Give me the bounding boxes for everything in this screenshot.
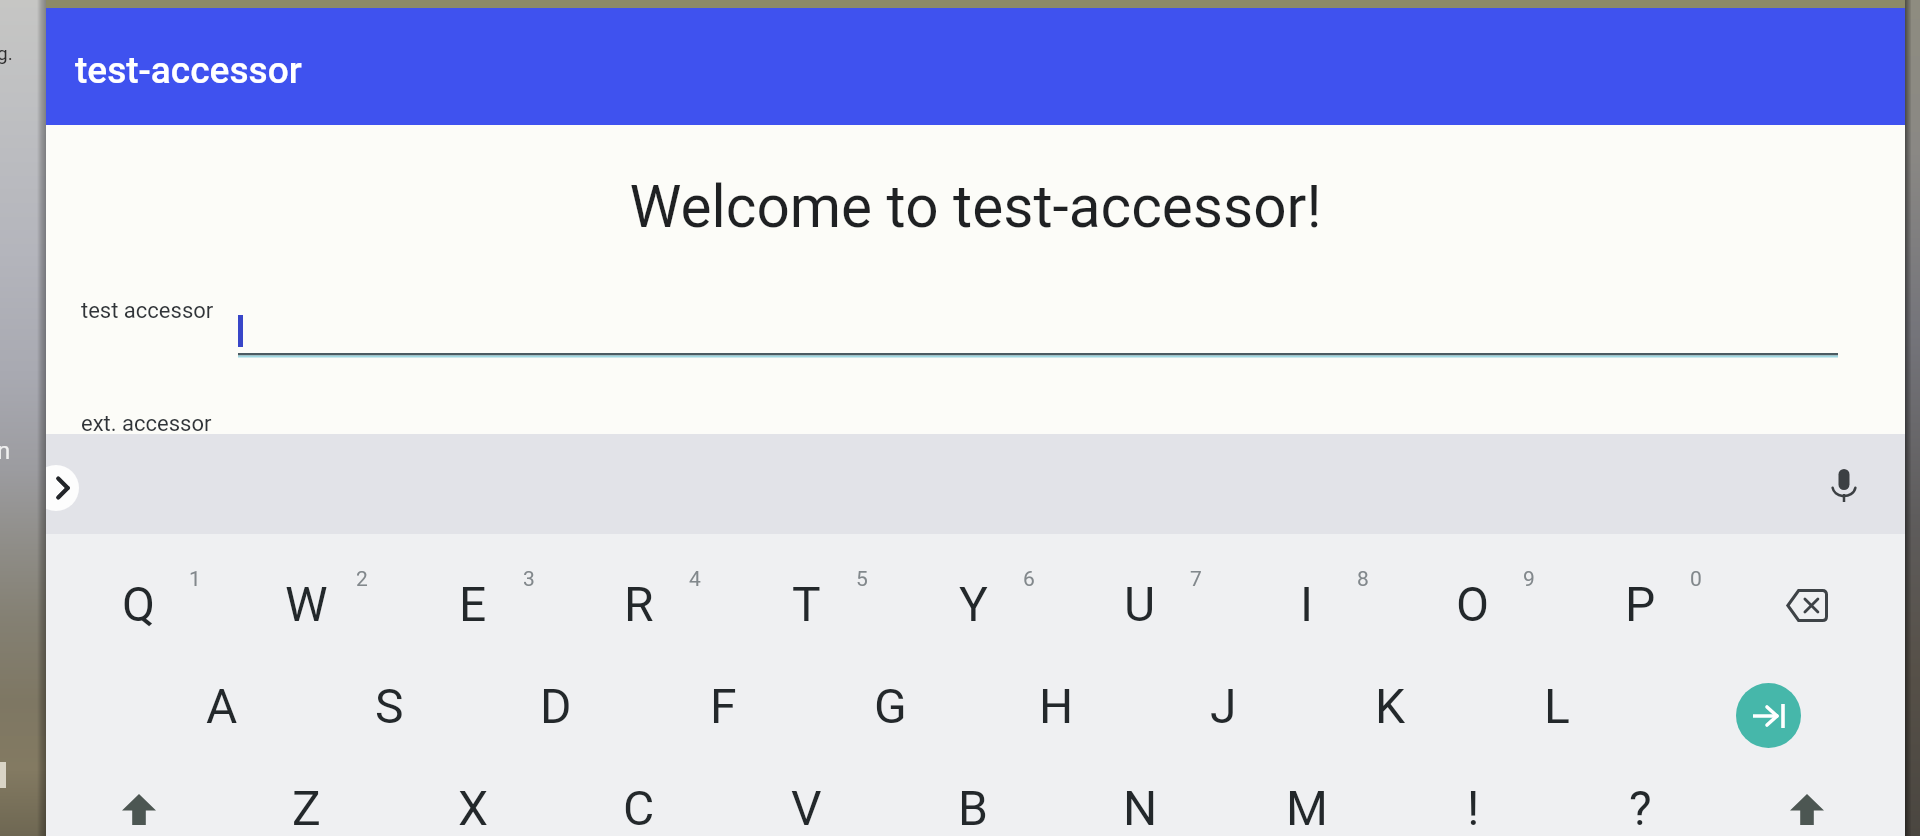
staticText: 2 <box>356 567 368 591</box>
staticText: 1 <box>189 567 201 591</box>
button[interactable]: H <box>973 656 1139 758</box>
staticText: E <box>459 576 487 632</box>
staticText: ! <box>1467 780 1480 836</box>
button[interactable]: F <box>640 656 806 758</box>
button[interactable]: Shift <box>1724 758 1890 836</box>
button[interactable]: W <box>223 554 389 656</box>
staticText: H <box>1039 678 1074 734</box>
button[interactable]: G <box>807 656 973 758</box>
button[interactable]: E <box>390 554 556 656</box>
button[interactable]: test-accessor <box>46 8 1905 125</box>
button[interactable]: A <box>139 656 305 758</box>
button[interactable]: Voice input <box>1815 457 1873 515</box>
button[interactable]: Shift <box>56 758 222 836</box>
button[interactable]: Show more suggestions <box>46 465 79 511</box>
staticText: 0 <box>1690 567 1702 591</box>
staticText: C <box>623 780 655 836</box>
staticText: 8 <box>1357 567 1369 591</box>
staticText: R <box>624 576 654 632</box>
staticText: S <box>375 678 404 734</box>
staticText: 3 <box>523 567 535 591</box>
button[interactable]: ! <box>1390 758 1556 836</box>
staticText: P <box>1625 576 1656 632</box>
button[interactable]: D <box>473 656 639 758</box>
button[interactable]: B <box>890 758 1056 836</box>
staticText: test-accessor <box>75 49 302 92</box>
staticText: X <box>458 780 489 836</box>
staticText: N <box>1123 780 1158 836</box>
button[interactable]: O <box>1390 554 1556 656</box>
button[interactable]: U <box>1057 554 1223 656</box>
button[interactable]: C <box>556 758 722 836</box>
staticText: g. <box>0 42 13 64</box>
button[interactable]: R <box>556 554 722 656</box>
staticText: A <box>206 678 238 734</box>
button[interactable]: J <box>1140 656 1306 758</box>
button[interactable]: X <box>390 758 556 836</box>
button[interactable]: M <box>1224 758 1390 836</box>
staticText: n <box>0 437 11 465</box>
button[interactable]: K <box>1307 656 1473 758</box>
button[interactable]: Z <box>223 758 389 836</box>
button[interactable]: L <box>1474 656 1640 758</box>
button[interactable]: V <box>723 758 889 836</box>
button[interactable]: T <box>723 554 889 656</box>
staticText: Q <box>122 576 156 632</box>
staticText: ? <box>1629 780 1652 836</box>
button[interactable]: Enter <box>1685 664 1851 766</box>
staticText: test accessor <box>81 298 214 324</box>
staticText: I <box>1300 576 1314 632</box>
button[interactable]: Backspace <box>1724 554 1890 656</box>
staticText: Welcome to test-accessor! <box>46 173 1905 242</box>
button[interactable]: Q <box>56 554 222 656</box>
staticText: 7 <box>1190 567 1202 591</box>
staticText: 9 <box>1523 567 1535 591</box>
staticText: J <box>1210 678 1237 734</box>
staticText: B <box>958 780 988 836</box>
staticText: K <box>1375 678 1406 734</box>
staticText: Z <box>292 780 321 836</box>
staticText: O <box>1456 576 1490 632</box>
staticText: T <box>792 576 821 632</box>
staticText: M <box>1286 780 1328 836</box>
staticText: G <box>874 678 907 734</box>
button[interactable]: N <box>1057 758 1223 836</box>
button[interactable]: Y <box>890 554 1056 656</box>
button[interactable]: S <box>306 656 472 758</box>
staticText: 5 <box>856 567 868 591</box>
staticText: L <box>1544 678 1570 734</box>
staticText: U <box>1124 576 1156 632</box>
button[interactable]: P <box>1557 554 1723 656</box>
staticText: F <box>710 678 737 734</box>
staticText: 6 <box>1023 567 1035 591</box>
staticText: W <box>285 576 328 632</box>
staticText: D <box>540 678 572 734</box>
staticText: Y <box>959 576 988 632</box>
button[interactable]: ext. accessor <box>46 397 1905 447</box>
staticText: 4 <box>689 567 701 591</box>
button[interactable]: ? <box>1557 758 1723 836</box>
staticText: ext. accessor <box>81 411 212 437</box>
button[interactable]: test accessor <box>46 285 1905 371</box>
button[interactable]: I <box>1224 554 1390 656</box>
staticText: V <box>791 780 822 836</box>
